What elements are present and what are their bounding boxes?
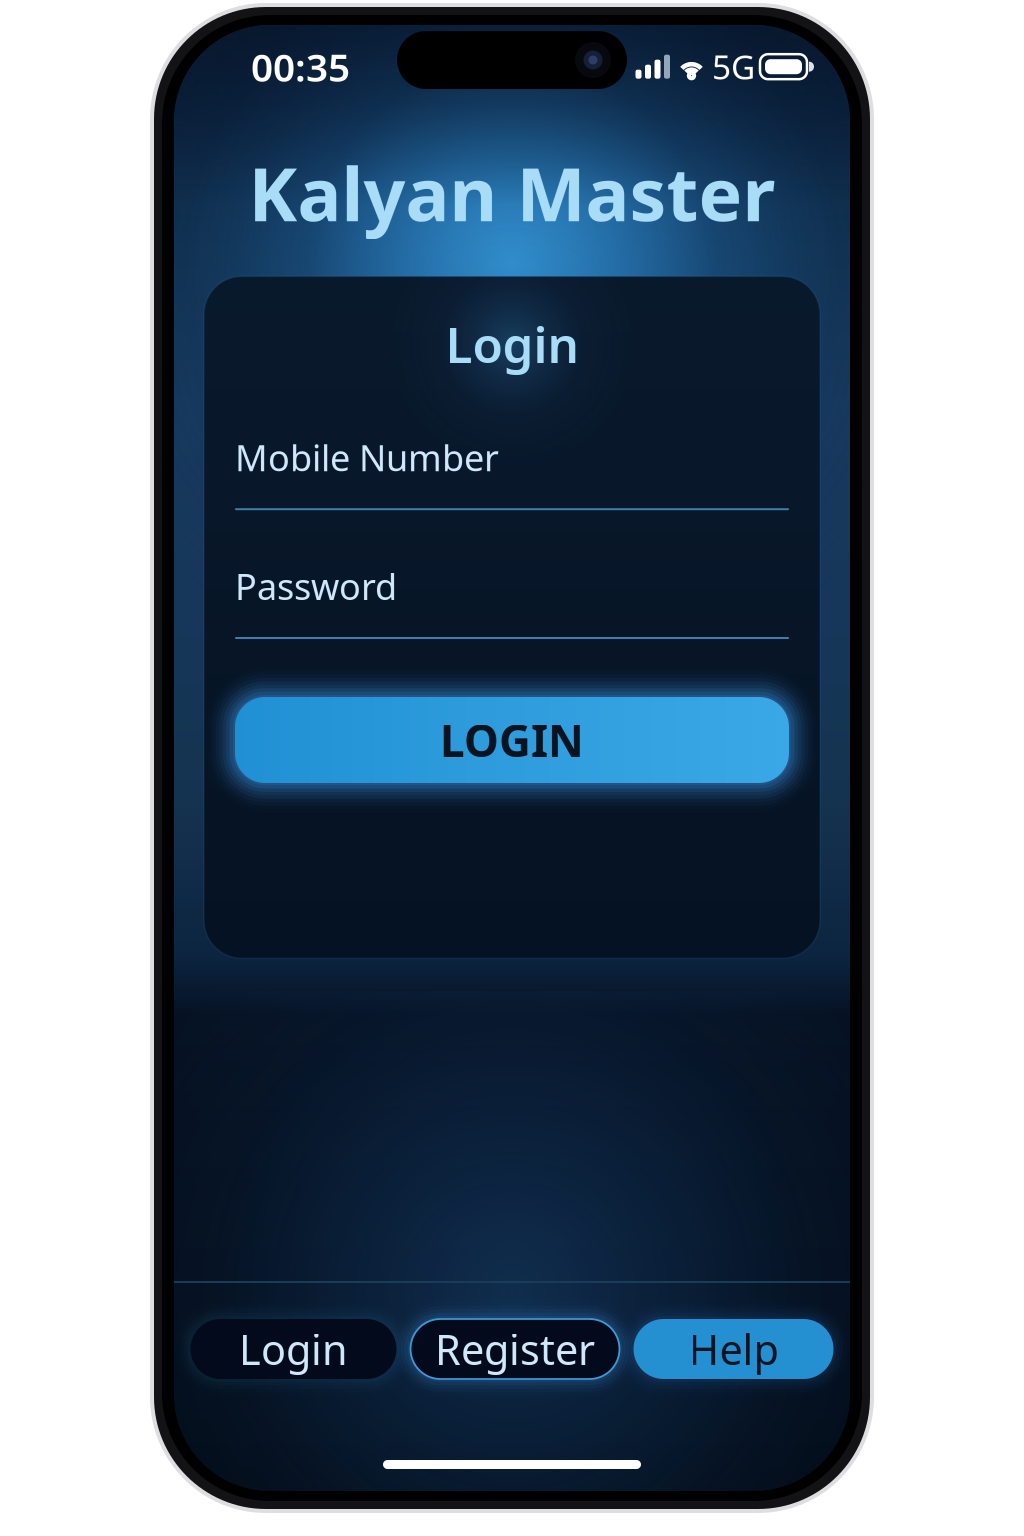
staticText: Register — [435, 1322, 595, 1376]
staticText: Mobile Number — [235, 433, 499, 481]
staticText: 5G — [712, 44, 755, 89]
staticText: Help — [688, 1322, 778, 1376]
button[interactable]: Login — [190, 1319, 396, 1379]
staticText: Login — [239, 1322, 348, 1376]
staticText: 00:35 — [251, 41, 350, 92]
button[interactable]: Register — [410, 1319, 619, 1379]
staticText: Kalyan Master — [248, 144, 775, 241]
staticText: Password — [235, 562, 397, 610]
staticText: Login — [445, 311, 578, 377]
staticText: LOGIN — [440, 711, 584, 769]
button[interactable]: LOGIN — [202, 697, 822, 783]
button[interactable]: Help — [633, 1319, 833, 1379]
